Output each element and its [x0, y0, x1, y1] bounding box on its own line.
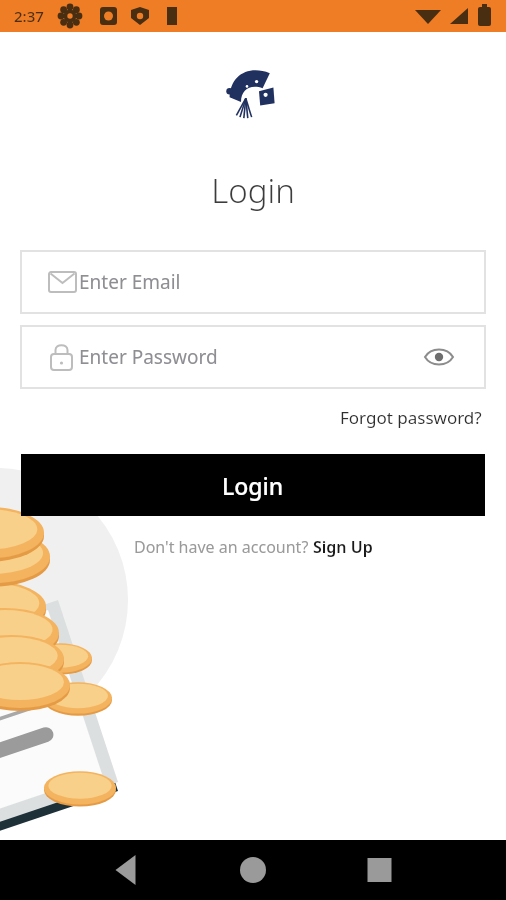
- staticText: Sign Up: [313, 536, 373, 558]
- staticText: Enter Email: [79, 269, 181, 295]
- staticText: Forgot password?: [340, 406, 482, 429]
- staticText: Login: [0, 168, 506, 213]
- button[interactable]: Recent apps: [340, 840, 420, 900]
- staticText: Enter Password: [79, 344, 218, 370]
- button[interactable]: Forgot password?: [337, 403, 485, 432]
- button[interactable]: Sign Up: [313, 536, 373, 558]
- staticText: Don't have an account?: [134, 536, 313, 558]
- button[interactable]: Home: [213, 840, 293, 900]
- staticText: 2:37: [14, 6, 44, 26]
- staticText: Login: [222, 470, 284, 501]
- button[interactable]: Back: [86, 840, 166, 900]
- button[interactable]: Enter Password: [21, 326, 485, 388]
- button[interactable]: Login: [21, 454, 485, 516]
- button[interactable]: Enter Email: [21, 251, 485, 313]
